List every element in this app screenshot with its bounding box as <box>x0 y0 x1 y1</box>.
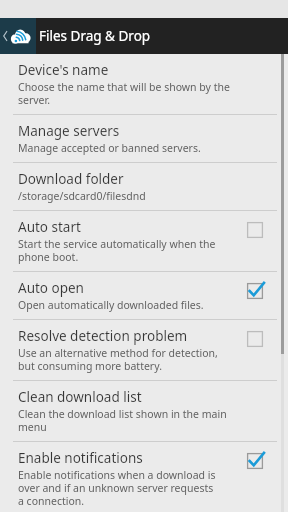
staticText: Clean download list <box>18 388 142 406</box>
button[interactable]: Enable notifications <box>0 442 288 512</box>
staticText: Clean the download list shown in the mai… <box>18 407 227 434</box>
staticText: Manage accepted or banned servers. <box>18 141 201 155</box>
button[interactable]: Clean download list <box>0 381 288 441</box>
button[interactable]: Enable notifications <box>246 452 264 470</box>
staticText: Resolve detection problem <box>18 327 188 345</box>
button[interactable]: Device's name <box>0 54 288 114</box>
staticText: Enable notifications <box>18 449 143 467</box>
button[interactable]: Resolve detection problem <box>0 320 288 380</box>
button[interactable]: Auto open <box>0 272 288 319</box>
staticText: Choose the name that will be shown by th… <box>18 80 230 107</box>
staticText: Files Drag & Drop <box>39 27 151 45</box>
button[interactable]: Resolve detection problem <box>246 330 264 348</box>
staticText: Download folder <box>18 170 124 188</box>
staticText: Use an alternative method for detection,… <box>18 346 218 373</box>
staticText: Enable notifications when a download is … <box>18 468 216 505</box>
button[interactable]: Download folder <box>0 163 288 210</box>
button[interactable]: Manage servers <box>0 115 288 162</box>
staticText: Start the service automatically when the… <box>18 237 216 264</box>
button[interactable]: Navigate up <box>0 18 36 54</box>
staticText: Auto start <box>18 218 81 236</box>
staticText: /storage/sdcard0/filesdnd <box>18 189 146 203</box>
button[interactable]: Auto open <box>246 282 264 300</box>
staticText: Open automatically downloaded files. <box>18 298 204 312</box>
staticText: Device's name <box>18 61 109 79</box>
button[interactable]: Auto start <box>0 211 288 271</box>
staticText: Manage servers <box>18 122 120 140</box>
button[interactable]: Auto start <box>246 221 264 239</box>
staticText: Auto open <box>18 279 84 297</box>
